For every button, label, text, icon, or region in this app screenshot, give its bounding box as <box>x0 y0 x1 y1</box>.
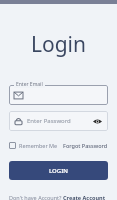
staticText: Login <box>0 30 117 59</box>
button[interactable]: Create Account <box>63 194 106 200</box>
staticText: LOGIN <box>49 167 68 175</box>
other: Email <box>14 91 23 100</box>
button[interactable]: Show password <box>92 116 103 127</box>
staticText: Create Account <box>63 194 106 200</box>
staticText: Remember Me <box>19 142 58 149</box>
button[interactable]: Forgot Password <box>63 140 108 151</box>
staticText: Enter Password <box>27 117 92 125</box>
button[interactable]: Email <box>9 85 108 105</box>
button[interactable]: Remember Me <box>9 140 58 151</box>
staticText: Don't have Account? <box>9 194 63 200</box>
button[interactable]: LOGIN <box>9 161 108 180</box>
staticText: Enter Email <box>16 81 43 88</box>
button[interactable]: Password <box>9 111 108 131</box>
other: Password <box>14 117 23 126</box>
staticText: Forgot Password <box>63 142 108 149</box>
